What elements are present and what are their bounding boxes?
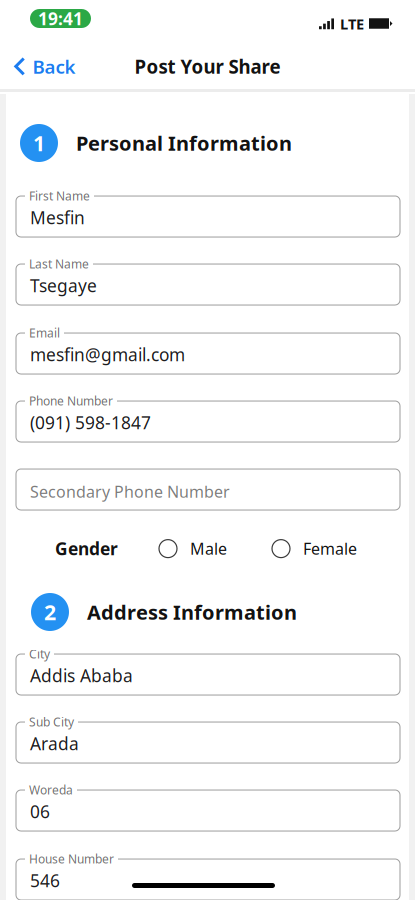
button[interactable]: (091) 598-1847: [16, 401, 400, 442]
button[interactable]: Secondary Phone Number: [16, 469, 400, 510]
staticText: Back: [32, 54, 75, 79]
staticText: Last Name: [29, 256, 89, 272]
staticText: Arada: [30, 732, 79, 755]
staticText: Personal Information: [76, 130, 292, 156]
staticText: Addis Ababa: [30, 664, 133, 687]
staticText: LTE: [340, 14, 364, 33]
staticText: Tsegaye: [30, 274, 97, 297]
staticText: House Number: [29, 851, 114, 867]
staticText: Post Your Share: [134, 54, 280, 79]
staticText: First Name: [29, 188, 90, 204]
staticText: mesfin@gmail.com: [30, 343, 185, 366]
staticText: Woreda: [29, 782, 73, 798]
staticText: 2: [44, 598, 56, 626]
staticText: Female: [303, 538, 357, 559]
staticText: 06: [30, 800, 50, 823]
staticText: 546: [30, 869, 60, 892]
staticText: Gender: [55, 537, 118, 560]
staticText: 19:41: [38, 7, 83, 30]
staticText: (091) 598-1847: [30, 411, 151, 434]
button[interactable]: Female: [272, 533, 357, 564]
button[interactable]: 546: [16, 859, 400, 900]
button[interactable]: 06: [16, 790, 400, 831]
staticText: Email: [29, 325, 60, 341]
button[interactable]: Mesfin: [16, 196, 400, 237]
button[interactable]: Back: [0, 47, 85, 86]
button[interactable]: Tsegaye: [16, 264, 400, 305]
staticText: Address Information: [87, 599, 297, 625]
staticText: City: [29, 646, 50, 662]
staticText: 1: [33, 129, 45, 157]
button[interactable]: mesfin@gmail.com: [16, 333, 400, 374]
button[interactable]: Male: [159, 533, 227, 564]
staticText: Sub City: [29, 714, 74, 730]
button[interactable]: Addis Ababa: [16, 654, 400, 695]
staticText: Mesfin: [30, 206, 85, 229]
staticText: Phone Number: [29, 393, 113, 409]
staticText: Secondary Phone Number: [30, 481, 230, 502]
button[interactable]: Arada: [16, 722, 400, 763]
staticText: Male: [190, 538, 227, 559]
